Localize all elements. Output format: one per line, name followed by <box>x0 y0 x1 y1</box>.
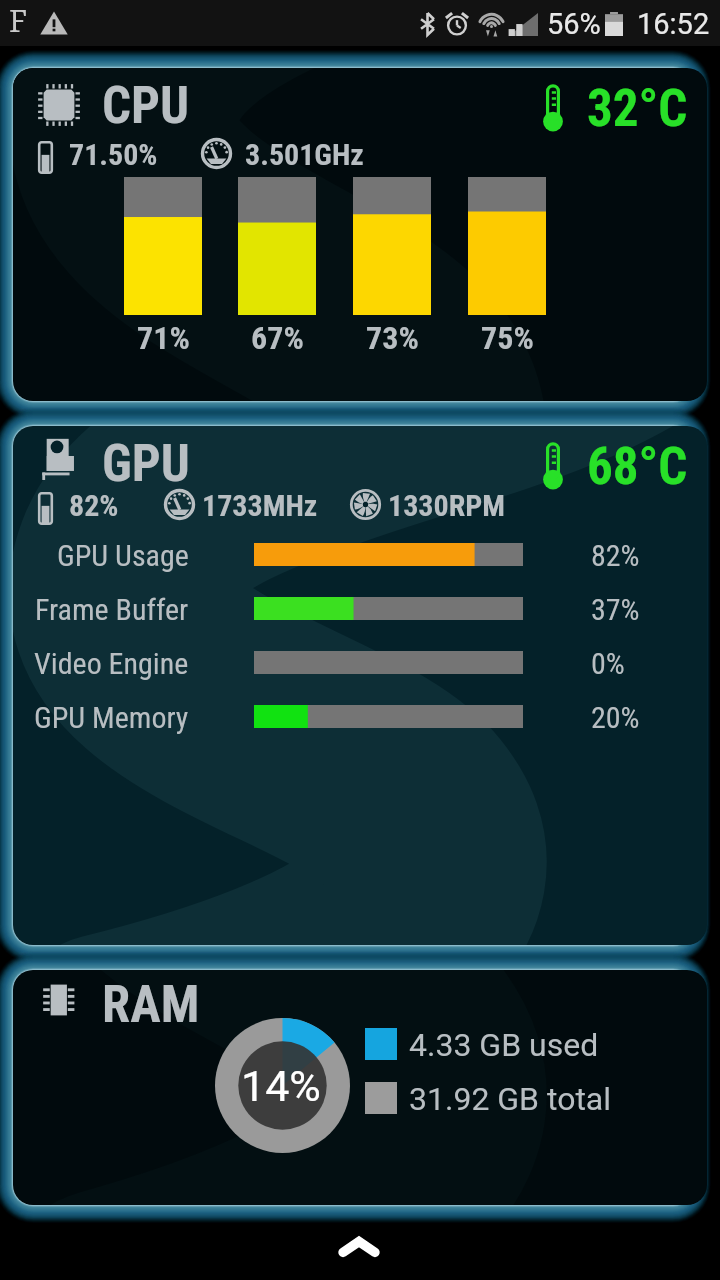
button[interactable]: Expand panel <box>319 1217 399 1277</box>
button[interactable]: GPU <box>13 426 707 945</box>
staticText: 3.501GHz <box>245 137 364 172</box>
button[interactable]: CPU <box>13 68 707 401</box>
staticText: 14% <box>241 1061 321 1111</box>
staticText: 82% <box>591 538 640 573</box>
staticText: Video Engine <box>34 646 189 681</box>
staticText: 56% <box>547 7 601 41</box>
staticText: Frame Buffer <box>35 592 189 627</box>
staticText: 68°C <box>587 437 688 497</box>
staticText: 0% <box>591 646 625 681</box>
staticText: 73% <box>366 319 419 357</box>
staticText: 16:52 <box>637 7 710 41</box>
staticText: 37% <box>591 592 640 627</box>
staticText: 31.92 GB total <box>409 1080 612 1118</box>
staticText: 75% <box>481 319 534 357</box>
staticText: GPU Memory <box>34 700 189 735</box>
staticText: 1330RPM <box>388 488 506 523</box>
staticText: RAM <box>102 975 200 1035</box>
staticText: CPU <box>102 76 190 136</box>
staticText: 67% <box>251 319 304 357</box>
staticText: GPU Usage <box>57 538 189 573</box>
staticText: 82% <box>69 488 119 523</box>
staticText: 1733MHz <box>202 488 318 523</box>
staticText: F <box>9 4 27 39</box>
staticText: 32°C <box>587 79 688 139</box>
staticText: 71.50% <box>69 137 158 172</box>
button[interactable]: RAM <box>13 970 707 1205</box>
staticText: 71% <box>137 319 190 357</box>
staticText: 20% <box>591 700 640 735</box>
staticText: 4.33 GB used <box>409 1026 599 1064</box>
staticText: GPU <box>102 434 190 494</box>
